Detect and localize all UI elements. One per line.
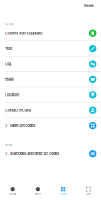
- button[interactable]: More QR codes: [0, 118, 101, 133]
- button[interactable]: Barcodes and other 2D codes: [0, 146, 101, 161]
- staticText: QR code: [5, 23, 13, 26]
- button[interactable]: URL: [0, 57, 101, 71]
- staticText: Scan: [86, 193, 90, 195]
- button[interactable]: Settings: [0, 185, 25, 197]
- button[interactable]: Content from clipboard: [0, 26, 101, 41]
- staticText: Location: [5, 92, 19, 97]
- staticText: History: [35, 193, 41, 195]
- staticText: Barcode: [5, 143, 12, 146]
- button[interactable]: History: [25, 185, 50, 197]
- staticText: Create: [60, 193, 66, 195]
- staticText: Text: [5, 46, 12, 51]
- button[interactable]: Location: [0, 87, 101, 102]
- staticText: Content from clipboard: [5, 31, 42, 36]
- staticText: More QR codes: [10, 123, 35, 128]
- button[interactable]: Create: [84, 4, 94, 8]
- staticText: URL: [5, 62, 12, 66]
- staticText: Create: [84, 4, 94, 8]
- button[interactable]: eMail: [0, 72, 101, 87]
- staticText: Settings: [9, 193, 16, 195]
- staticText: Barcodes and other 2D codes: [10, 151, 59, 156]
- staticText: Contact (vCard): [5, 108, 31, 113]
- button[interactable]: Create: [50, 185, 76, 197]
- button[interactable]: Scan: [76, 185, 101, 197]
- button[interactable]: Contact (vCard): [0, 103, 101, 118]
- staticText: eMail: [5, 77, 14, 82]
- button[interactable]: Text: [0, 41, 101, 56]
